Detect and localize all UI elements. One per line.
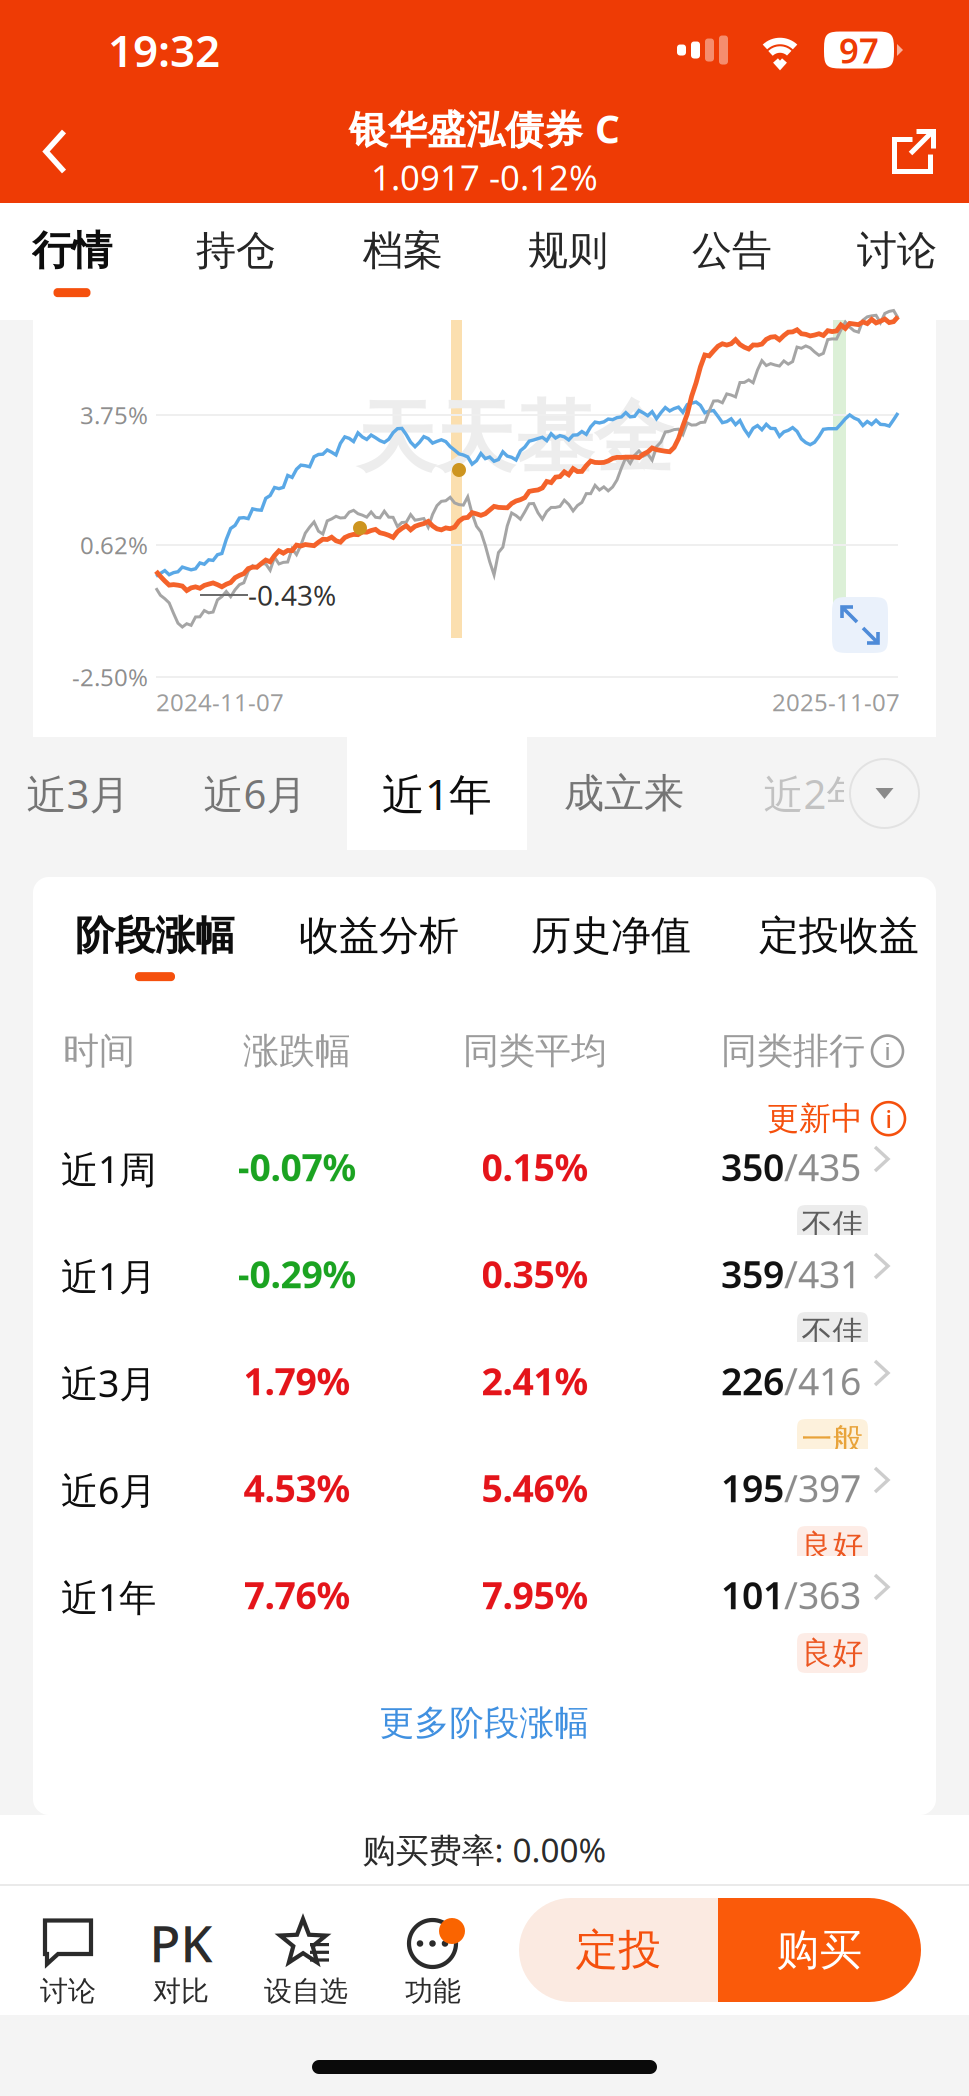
staticText: 226 — [721, 1356, 784, 1406]
staticText: i — [884, 1036, 890, 1066]
staticText: 7.95% — [481, 1570, 588, 1620]
staticText: 101 — [721, 1570, 784, 1620]
staticText: 同类排行 — [721, 1029, 865, 1073]
staticText: 1.79% — [243, 1356, 350, 1406]
staticText: /397 — [784, 1463, 861, 1513]
staticText: /416 — [784, 1356, 861, 1406]
button[interactable]: 更多阶段涨幅 — [33, 1677, 936, 1769]
button[interactable]: 历史净值 — [531, 911, 691, 981]
button[interactable]: 近1年 — [33, 1561, 936, 1668]
button[interactable]: 更多区间 — [850, 759, 919, 828]
button[interactable]: 全屏 — [832, 597, 888, 653]
button[interactable]: 购买 — [718, 1898, 921, 2002]
button[interactable]: 分享 — [859, 100, 969, 203]
staticText: 银华盛泓债券 C — [349, 103, 620, 154]
button[interactable]: 近1周 — [33, 1133, 936, 1240]
button[interactable]: 近6月 — [33, 1454, 936, 1561]
staticText: 近3月 — [61, 1358, 156, 1408]
staticText: 一般 — [801, 1420, 863, 1458]
staticText: 近1年 — [61, 1572, 156, 1622]
staticText: 购买 — [776, 1924, 862, 1976]
staticText: 近1年 — [382, 765, 492, 822]
staticText: 购买费率: 0.00% — [362, 1827, 606, 1872]
button[interactable]: 近3月 — [18, 737, 138, 850]
button[interactable]: 阶段涨幅 — [75, 911, 235, 981]
button[interactable]: 讨论 — [842, 203, 952, 320]
staticText: 350 — [721, 1142, 784, 1192]
staticText: 时间 — [63, 1029, 135, 1073]
staticText: 持仓 — [196, 226, 276, 275]
button[interactable]: 定投收益 — [759, 911, 919, 981]
staticText: 更新中 — [767, 1099, 863, 1138]
staticText: 2.41% — [481, 1356, 588, 1406]
staticText: 2025-11-07 — [772, 686, 900, 718]
staticText: 5.46% — [481, 1463, 588, 1513]
button[interactable]: 近1年 — [347, 737, 527, 850]
staticText: -2.50% — [72, 661, 148, 693]
button[interactable]: 成立来 — [563, 737, 685, 850]
button[interactable]: 近6月 — [205, 737, 305, 850]
button[interactable]: 讨论 — [13, 1886, 123, 2015]
staticText: 近6月 — [203, 767, 306, 820]
staticText: 更多阶段涨幅 — [379, 1702, 589, 1744]
button[interactable]: 近3月 — [33, 1347, 936, 1454]
button[interactable]: 行情 — [17, 203, 127, 320]
staticText: -0.43% — [248, 576, 336, 614]
staticText: 讨论 — [857, 226, 937, 275]
staticText: 1.0917 -0.12% — [371, 154, 598, 200]
button[interactable]: 持仓 — [181, 203, 291, 320]
staticText: 设自选 — [264, 1974, 348, 2008]
staticText: 近6月 — [61, 1465, 156, 1515]
staticText: 不佳 — [801, 1206, 863, 1244]
staticText: 近3月 — [26, 767, 129, 820]
staticText: 公告 — [692, 226, 772, 275]
staticText: 收益分析 — [299, 911, 459, 960]
staticText: 行情 — [32, 226, 112, 275]
staticText: 3.75% — [80, 399, 148, 431]
staticText: 档案 — [363, 226, 443, 275]
button[interactable]: 收益分析 — [299, 911, 459, 981]
button[interactable]: 公告 — [677, 203, 787, 320]
button[interactable]: 规则 — [513, 203, 623, 320]
staticText: 阶段涨幅 — [75, 911, 235, 960]
button[interactable]: 近2年 — [765, 737, 865, 850]
staticText: 近2年 — [763, 767, 866, 820]
staticText: /363 — [784, 1570, 861, 1620]
staticText: 良好 — [801, 1527, 863, 1565]
button[interactable]: 设自选 — [251, 1886, 361, 2015]
staticText: /431 — [784, 1249, 861, 1299]
staticText: 涨跌幅 — [243, 1029, 351, 1073]
staticText: 定投收益 — [759, 911, 919, 960]
staticText: 0.15% — [481, 1142, 588, 1192]
staticText: 对比 — [153, 1974, 209, 2008]
staticText: PK — [149, 1909, 212, 1976]
staticText: 近1周 — [61, 1144, 156, 1194]
button[interactable]: 返回 — [0, 100, 110, 203]
staticText: 近1月 — [61, 1251, 156, 1301]
staticText: 4.53% — [243, 1463, 350, 1513]
staticText: 359 — [721, 1249, 784, 1299]
staticText: 7.76% — [243, 1570, 350, 1620]
staticText: 定投 — [575, 1924, 661, 1976]
staticText: /435 — [784, 1142, 861, 1192]
staticText: 规则 — [528, 226, 608, 275]
staticText: 0.62% — [80, 529, 148, 561]
staticText: 讨论 — [40, 1974, 96, 2008]
staticText: 2024-11-07 — [156, 686, 284, 718]
staticText: i — [885, 1103, 891, 1135]
staticText: 97 — [839, 27, 879, 73]
staticText: 天天基金 — [357, 390, 673, 487]
staticText: 功能 — [405, 1974, 461, 2008]
staticText: 历史净值 — [531, 911, 691, 960]
staticText: 0.35% — [481, 1249, 588, 1299]
button[interactable]: PK — [126, 1886, 236, 2015]
staticText: 成立来 — [564, 769, 684, 818]
button[interactable]: 近1月 — [33, 1240, 936, 1347]
staticText: 19:32 — [108, 21, 220, 79]
staticText: -0.07% — [237, 1142, 356, 1192]
button[interactable]: 档案 — [348, 203, 458, 320]
button[interactable]: 功能 — [378, 1886, 488, 2015]
staticText: 不佳 — [801, 1313, 863, 1351]
staticText: 同类平均 — [463, 1029, 607, 1073]
button[interactable]: 定投 — [519, 1898, 718, 2002]
